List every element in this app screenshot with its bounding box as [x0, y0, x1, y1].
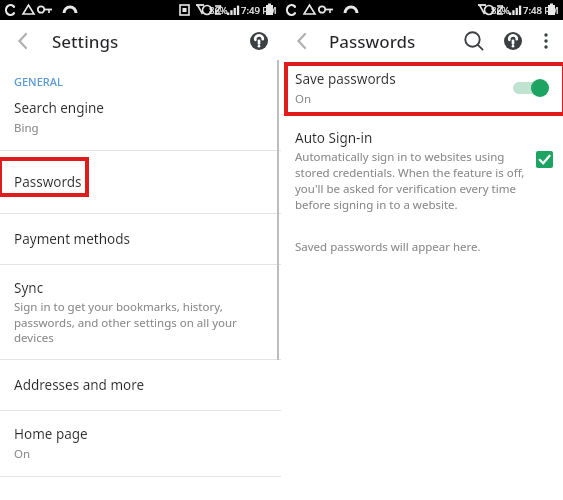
staticText: Save passwords	[295, 70, 396, 88]
staticText: Settings	[52, 30, 119, 53]
staticText: On	[295, 91, 312, 107]
staticText: Saved passwords will appear here.	[295, 239, 481, 255]
button[interactable]: Save passwords toggle	[513, 77, 549, 99]
button[interactable]: Back	[8, 26, 38, 56]
staticText: Sign in to get your bookmarks, history, …	[14, 299, 269, 345]
staticText: 7:49 PM	[241, 4, 277, 17]
button[interactable]: Payment methods	[0, 214, 281, 264]
button[interactable]: Search	[459, 26, 489, 56]
staticText: GENERAL	[14, 74, 63, 89]
staticText: On	[14, 446, 31, 462]
button[interactable]: Auto Sign-in checkbox	[536, 151, 553, 168]
button[interactable]: More options	[533, 28, 559, 54]
staticText: Passwords	[329, 30, 416, 53]
button[interactable]: Addresses and more	[0, 360, 281, 410]
staticText: 86%	[491, 4, 510, 17]
staticText: Payment methods	[14, 230, 130, 248]
button[interactable]: Auto Sign-in	[281, 129, 563, 213]
staticText: Home page	[14, 425, 88, 443]
button[interactable]: Help	[245, 27, 273, 55]
staticText: Auto Sign-in	[295, 129, 373, 147]
staticText: Bing	[14, 120, 39, 136]
staticText: 7:48 PM	[523, 4, 559, 17]
staticText: Search engine	[14, 99, 104, 117]
button[interactable]: Help	[499, 27, 527, 55]
button[interactable]: Search engine	[0, 99, 281, 150]
button[interactable]: Sync	[0, 265, 281, 359]
staticText: Sync	[14, 279, 44, 297]
staticText: Passwords	[14, 173, 82, 191]
staticText: 86%	[209, 4, 228, 17]
staticText: Addresses and more	[14, 376, 145, 394]
button[interactable]: Back	[287, 26, 317, 56]
button[interactable]: Save passwords	[281, 62, 563, 114]
staticText: Automatically sign in to websites using …	[295, 149, 530, 213]
button[interactable]: Home page	[0, 411, 281, 476]
